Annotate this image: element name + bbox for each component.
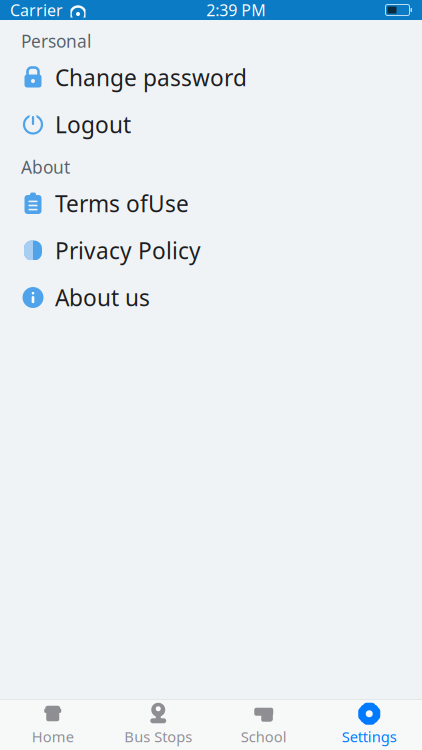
button[interactable]: Change password	[0, 54, 422, 101]
staticText: Terms ofUse	[55, 188, 189, 218]
staticText: Change password	[55, 62, 247, 92]
button[interactable]: School	[211, 700, 316, 749]
staticText: Logout	[55, 109, 131, 139]
button[interactable]: Privacy Policy	[0, 227, 422, 274]
staticText: Home	[32, 727, 74, 746]
button[interactable]: Home	[0, 700, 105, 749]
staticText: School	[241, 727, 287, 746]
staticText: About us	[55, 282, 150, 312]
button[interactable]: Bus Stops	[105, 700, 211, 749]
button[interactable]: Terms ofUse	[0, 180, 422, 227]
staticText: Bus Stops	[124, 727, 192, 746]
staticText: Carrier	[10, 0, 63, 21]
staticText: Settings	[342, 727, 397, 746]
staticText: Personal	[21, 29, 91, 52]
button[interactable]: About us	[0, 274, 422, 321]
button[interactable]: Logout	[0, 101, 422, 148]
staticText: Privacy Policy	[55, 235, 201, 265]
staticText: 2:39 PM	[206, 0, 266, 21]
button[interactable]: Settings	[316, 700, 422, 749]
staticText: About	[21, 155, 70, 178]
